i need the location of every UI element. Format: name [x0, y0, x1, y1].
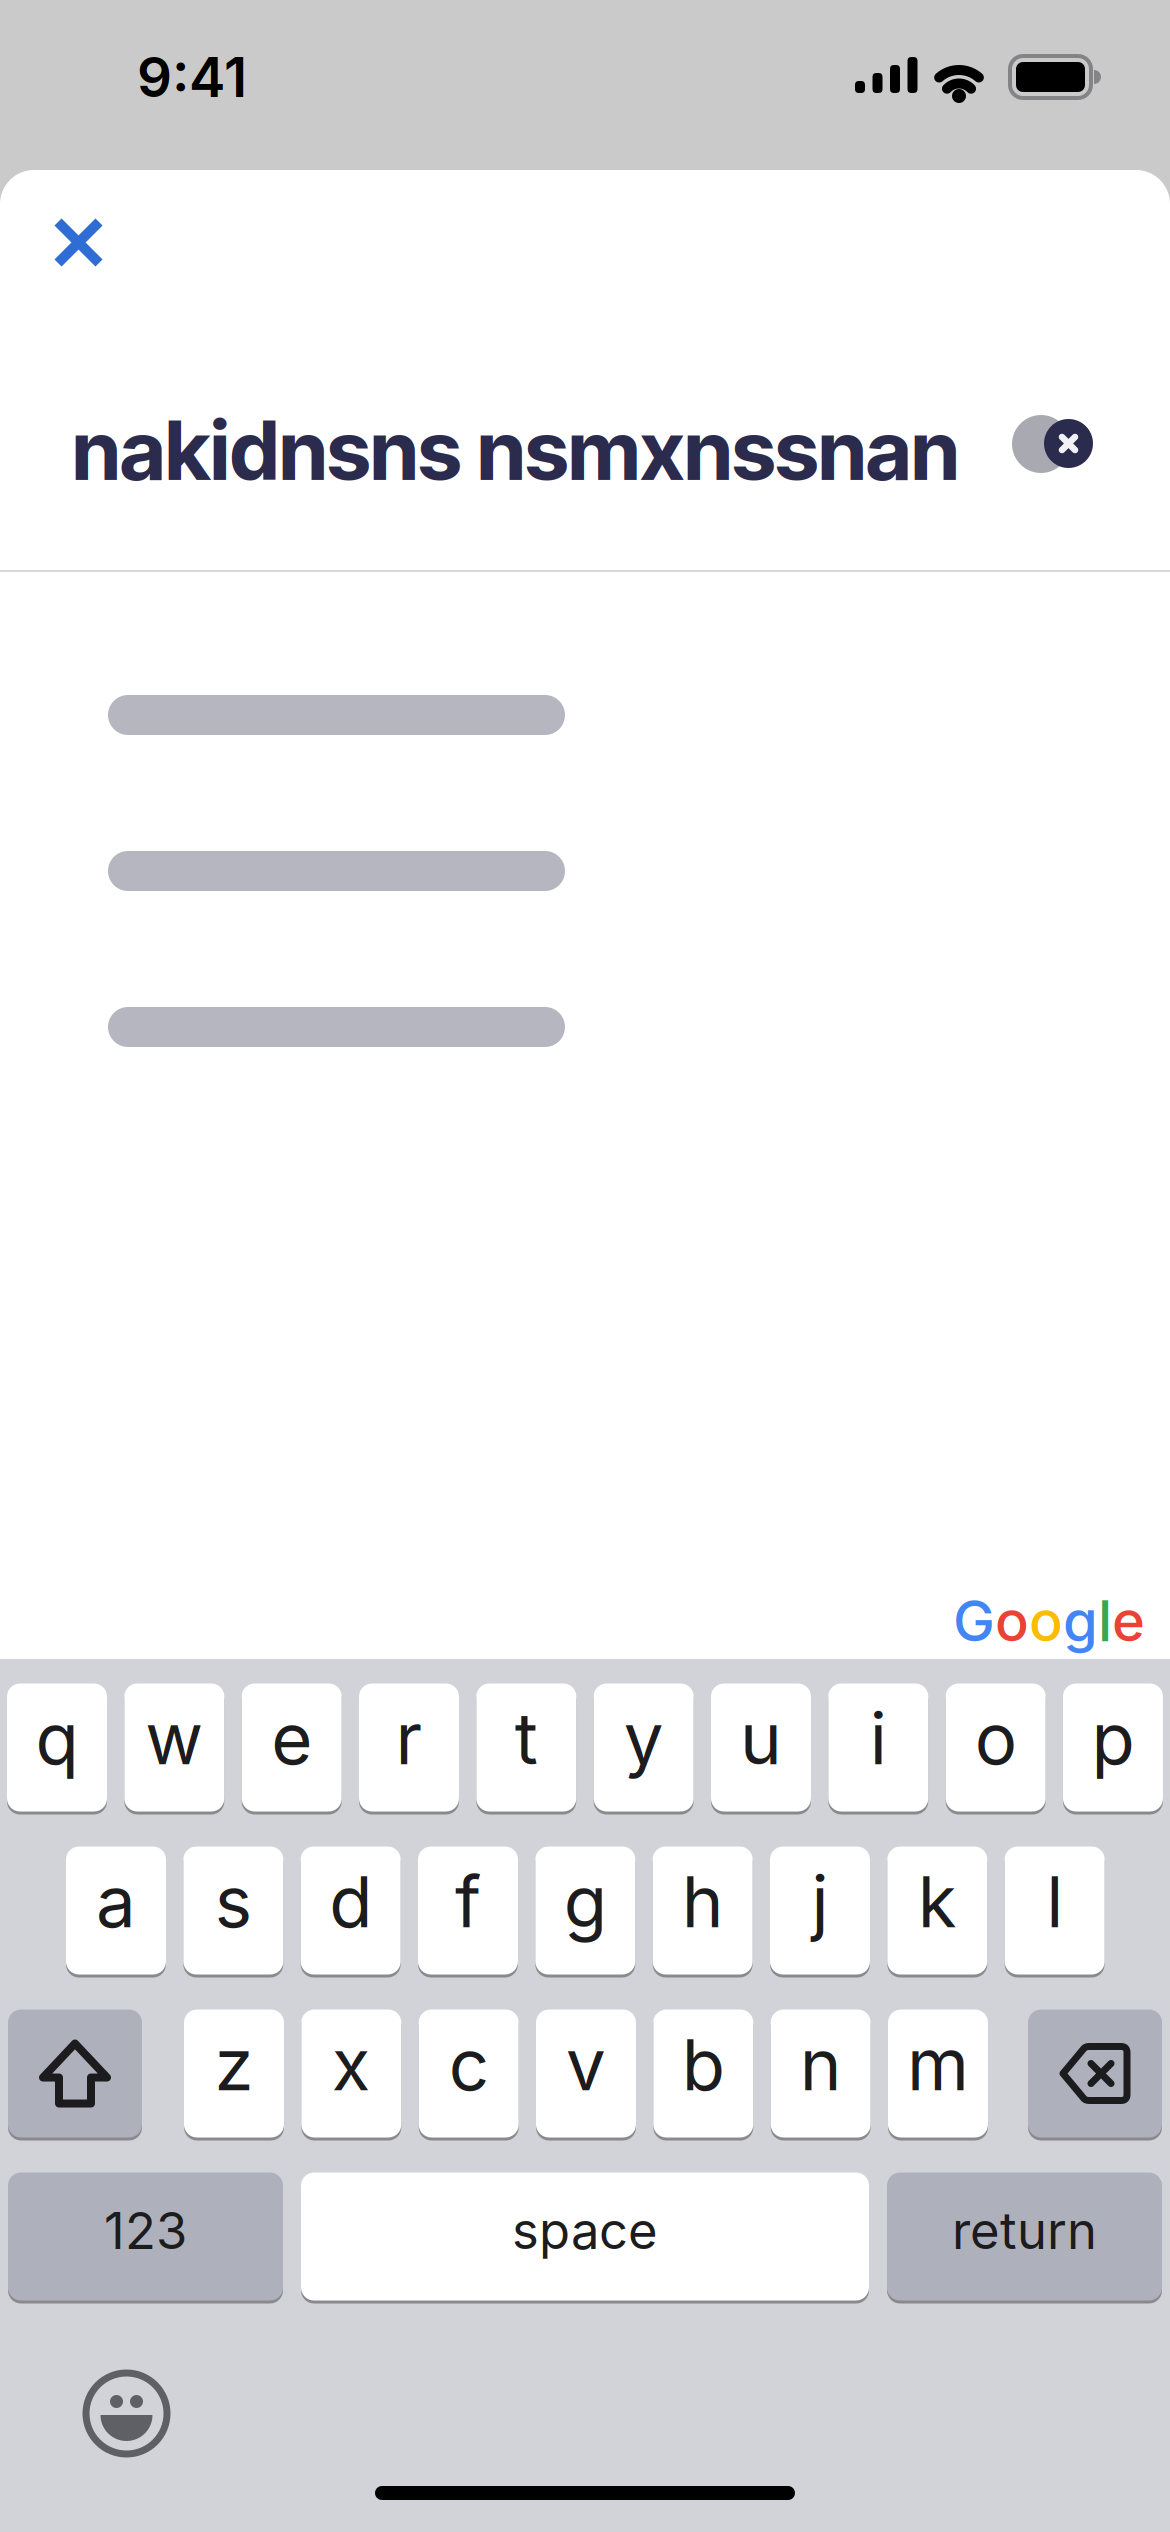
staticText: j [811, 1859, 828, 1944]
button[interactable]: q [7, 1682, 107, 1813]
button[interactable]: Delete [1028, 2008, 1162, 2139]
button[interactable]: t [476, 1682, 576, 1813]
staticText: space [512, 2200, 658, 2261]
button[interactable]: n [771, 2008, 871, 2139]
staticText: a [96, 1859, 136, 1944]
button[interactable]: s [183, 1845, 283, 1976]
staticText: w [145, 1696, 203, 1781]
staticText: u [740, 1696, 782, 1781]
button[interactable]: return [887, 2171, 1162, 2302]
staticText: l [1098, 1587, 1112, 1655]
staticText: c [449, 2022, 489, 2107]
button[interactable]: j [770, 1845, 870, 1976]
staticText: e [271, 1696, 312, 1781]
button[interactable]: z [184, 2008, 284, 2139]
staticText: g [1063, 1587, 1098, 1655]
staticText: r [395, 1696, 422, 1781]
staticText: G [953, 1587, 995, 1655]
staticText: s [215, 1859, 252, 1944]
staticText: z [214, 2022, 253, 2107]
button[interactable]: m [888, 2008, 988, 2139]
staticText: o [975, 1696, 1017, 1781]
button[interactable]: a [66, 1845, 166, 1976]
button[interactable]: c [419, 2008, 519, 2139]
staticText: d [329, 1859, 372, 1944]
button[interactable]: v [536, 2008, 636, 2139]
staticText: e [1112, 1587, 1145, 1655]
button[interactable]: Numbers [8, 2171, 283, 2302]
staticText: o [995, 1587, 1029, 1655]
staticText: b [682, 2022, 725, 2107]
button[interactable]: u [711, 1682, 811, 1813]
button[interactable]: Emoji [86, 2373, 167, 2454]
button[interactable]: w [124, 1682, 224, 1813]
button[interactable]: i [828, 1682, 928, 1813]
button[interactable]: f [418, 1845, 518, 1976]
staticText: q [35, 1696, 78, 1781]
button[interactable]: y [594, 1682, 694, 1813]
staticText: nakidnsns nsmxnssnan [72, 400, 959, 499]
staticText: h [682, 1859, 724, 1944]
staticText: g [564, 1859, 607, 1944]
button[interactable]: b [653, 2008, 753, 2139]
staticText: n [800, 2022, 842, 2107]
staticText: p [1091, 1696, 1134, 1781]
staticText: 9:41 [137, 44, 247, 110]
button[interactable]: k [887, 1845, 987, 1976]
button[interactable]: Shift [8, 2008, 142, 2139]
staticText: i [870, 1696, 887, 1781]
staticText: o [1029, 1587, 1063, 1655]
button[interactable]: Clear text [1044, 419, 1093, 468]
button[interactable]: o [946, 1682, 1046, 1813]
staticText: k [918, 1859, 957, 1944]
staticText: 123 [104, 2200, 187, 2261]
staticText: t [515, 1696, 538, 1781]
button[interactable]: Close [50, 214, 107, 271]
button[interactable]: r [359, 1682, 459, 1813]
button[interactable]: x [301, 2008, 401, 2139]
staticText: f [455, 1859, 481, 1944]
button[interactable]: p [1063, 1682, 1163, 1813]
button[interactable]: l [1005, 1845, 1105, 1976]
staticText: y [624, 1696, 664, 1781]
staticText: x [332, 2022, 371, 2107]
staticText: l [1046, 1859, 1063, 1944]
button[interactable]: space [301, 2171, 869, 2302]
staticText: return [952, 2200, 1097, 2261]
button[interactable]: d [301, 1845, 401, 1976]
staticText: v [566, 2022, 606, 2107]
button[interactable]: h [653, 1845, 753, 1976]
staticText: m [907, 2022, 969, 2107]
button[interactable]: e [242, 1682, 342, 1813]
button[interactable]: g [535, 1845, 635, 1976]
